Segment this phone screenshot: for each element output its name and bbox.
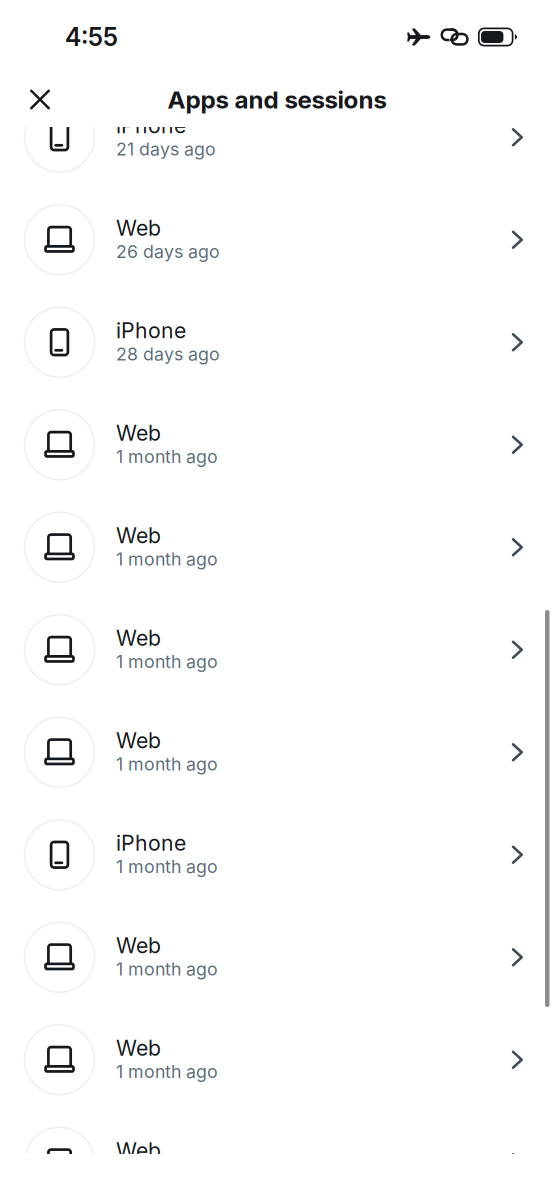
staticText: 26 days ago: [116, 241, 220, 262]
button[interactable]: Web: [0, 393, 554, 496]
staticText: Apps and sessions: [167, 85, 386, 114]
staticText: 1 month ago: [116, 446, 218, 467]
staticText: Web: [116, 933, 161, 958]
staticText: iPhone: [116, 318, 186, 343]
button[interactable]: iPhone: [0, 291, 554, 393]
button[interactable]: Close: [18, 77, 62, 121]
button[interactable]: iPhone: [0, 803, 554, 906]
staticText: Web: [116, 1035, 161, 1061]
button[interactable]: Web: [0, 1111, 554, 1200]
staticText: 1 month ago: [116, 1061, 218, 1082]
staticText: 1 month ago: [116, 753, 218, 775]
button[interactable]: Web: [0, 188, 554, 291]
staticText: iPhone: [116, 113, 186, 138]
staticText: Web: [116, 420, 161, 446]
button[interactable]: Web: [0, 701, 554, 803]
button[interactable]: Web: [0, 1008, 554, 1111]
button[interactable]: iPhone: [0, 86, 554, 188]
staticText: 21 days ago: [116, 138, 216, 160]
staticText: 1 month ago: [116, 856, 218, 877]
button[interactable]: Web: [0, 496, 554, 598]
staticText: 28 days ago: [116, 343, 220, 365]
staticText: 4:55: [65, 22, 118, 52]
staticText: iPhone: [116, 830, 186, 856]
staticText: Web: [116, 728, 161, 753]
staticText: 1 month ago: [116, 651, 218, 672]
staticText: 1 month ago: [116, 548, 218, 570]
button[interactable]: Web: [0, 906, 554, 1008]
staticText: Web: [116, 625, 161, 651]
staticText: Web: [116, 215, 161, 241]
staticText: 1 month ago: [116, 958, 218, 980]
staticText: Web: [116, 523, 161, 548]
staticText: Web: [116, 1138, 161, 1163]
button[interactable]: Web: [0, 598, 554, 701]
